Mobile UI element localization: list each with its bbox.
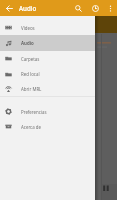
button[interactable]: Audio [0,35,95,51]
button[interactable]: Red local [0,66,95,82]
button[interactable]: More options [104,0,117,16]
staticText: Vídeos [21,25,35,31]
button[interactable]: Abrir MRL [0,82,95,96]
button[interactable]: Back [0,0,19,16]
staticText: Preferencias [21,109,47,115]
staticText: Acerca de [21,124,42,130]
button[interactable]: Preferencias [0,104,95,119]
staticText: Abrir MRL [21,86,42,92]
button[interactable]: Carpetas [0,51,95,66]
button[interactable]: Vídeos [0,20,95,35]
button[interactable]: Sleep timer [87,0,104,16]
button[interactable]: Acerca de [0,119,95,134]
button[interactable]: Search [70,0,87,16]
staticText: Audio [19,4,37,12]
staticText: Audio [21,40,34,46]
staticText: Carpetas [21,56,40,62]
staticText: Red local [21,71,40,77]
